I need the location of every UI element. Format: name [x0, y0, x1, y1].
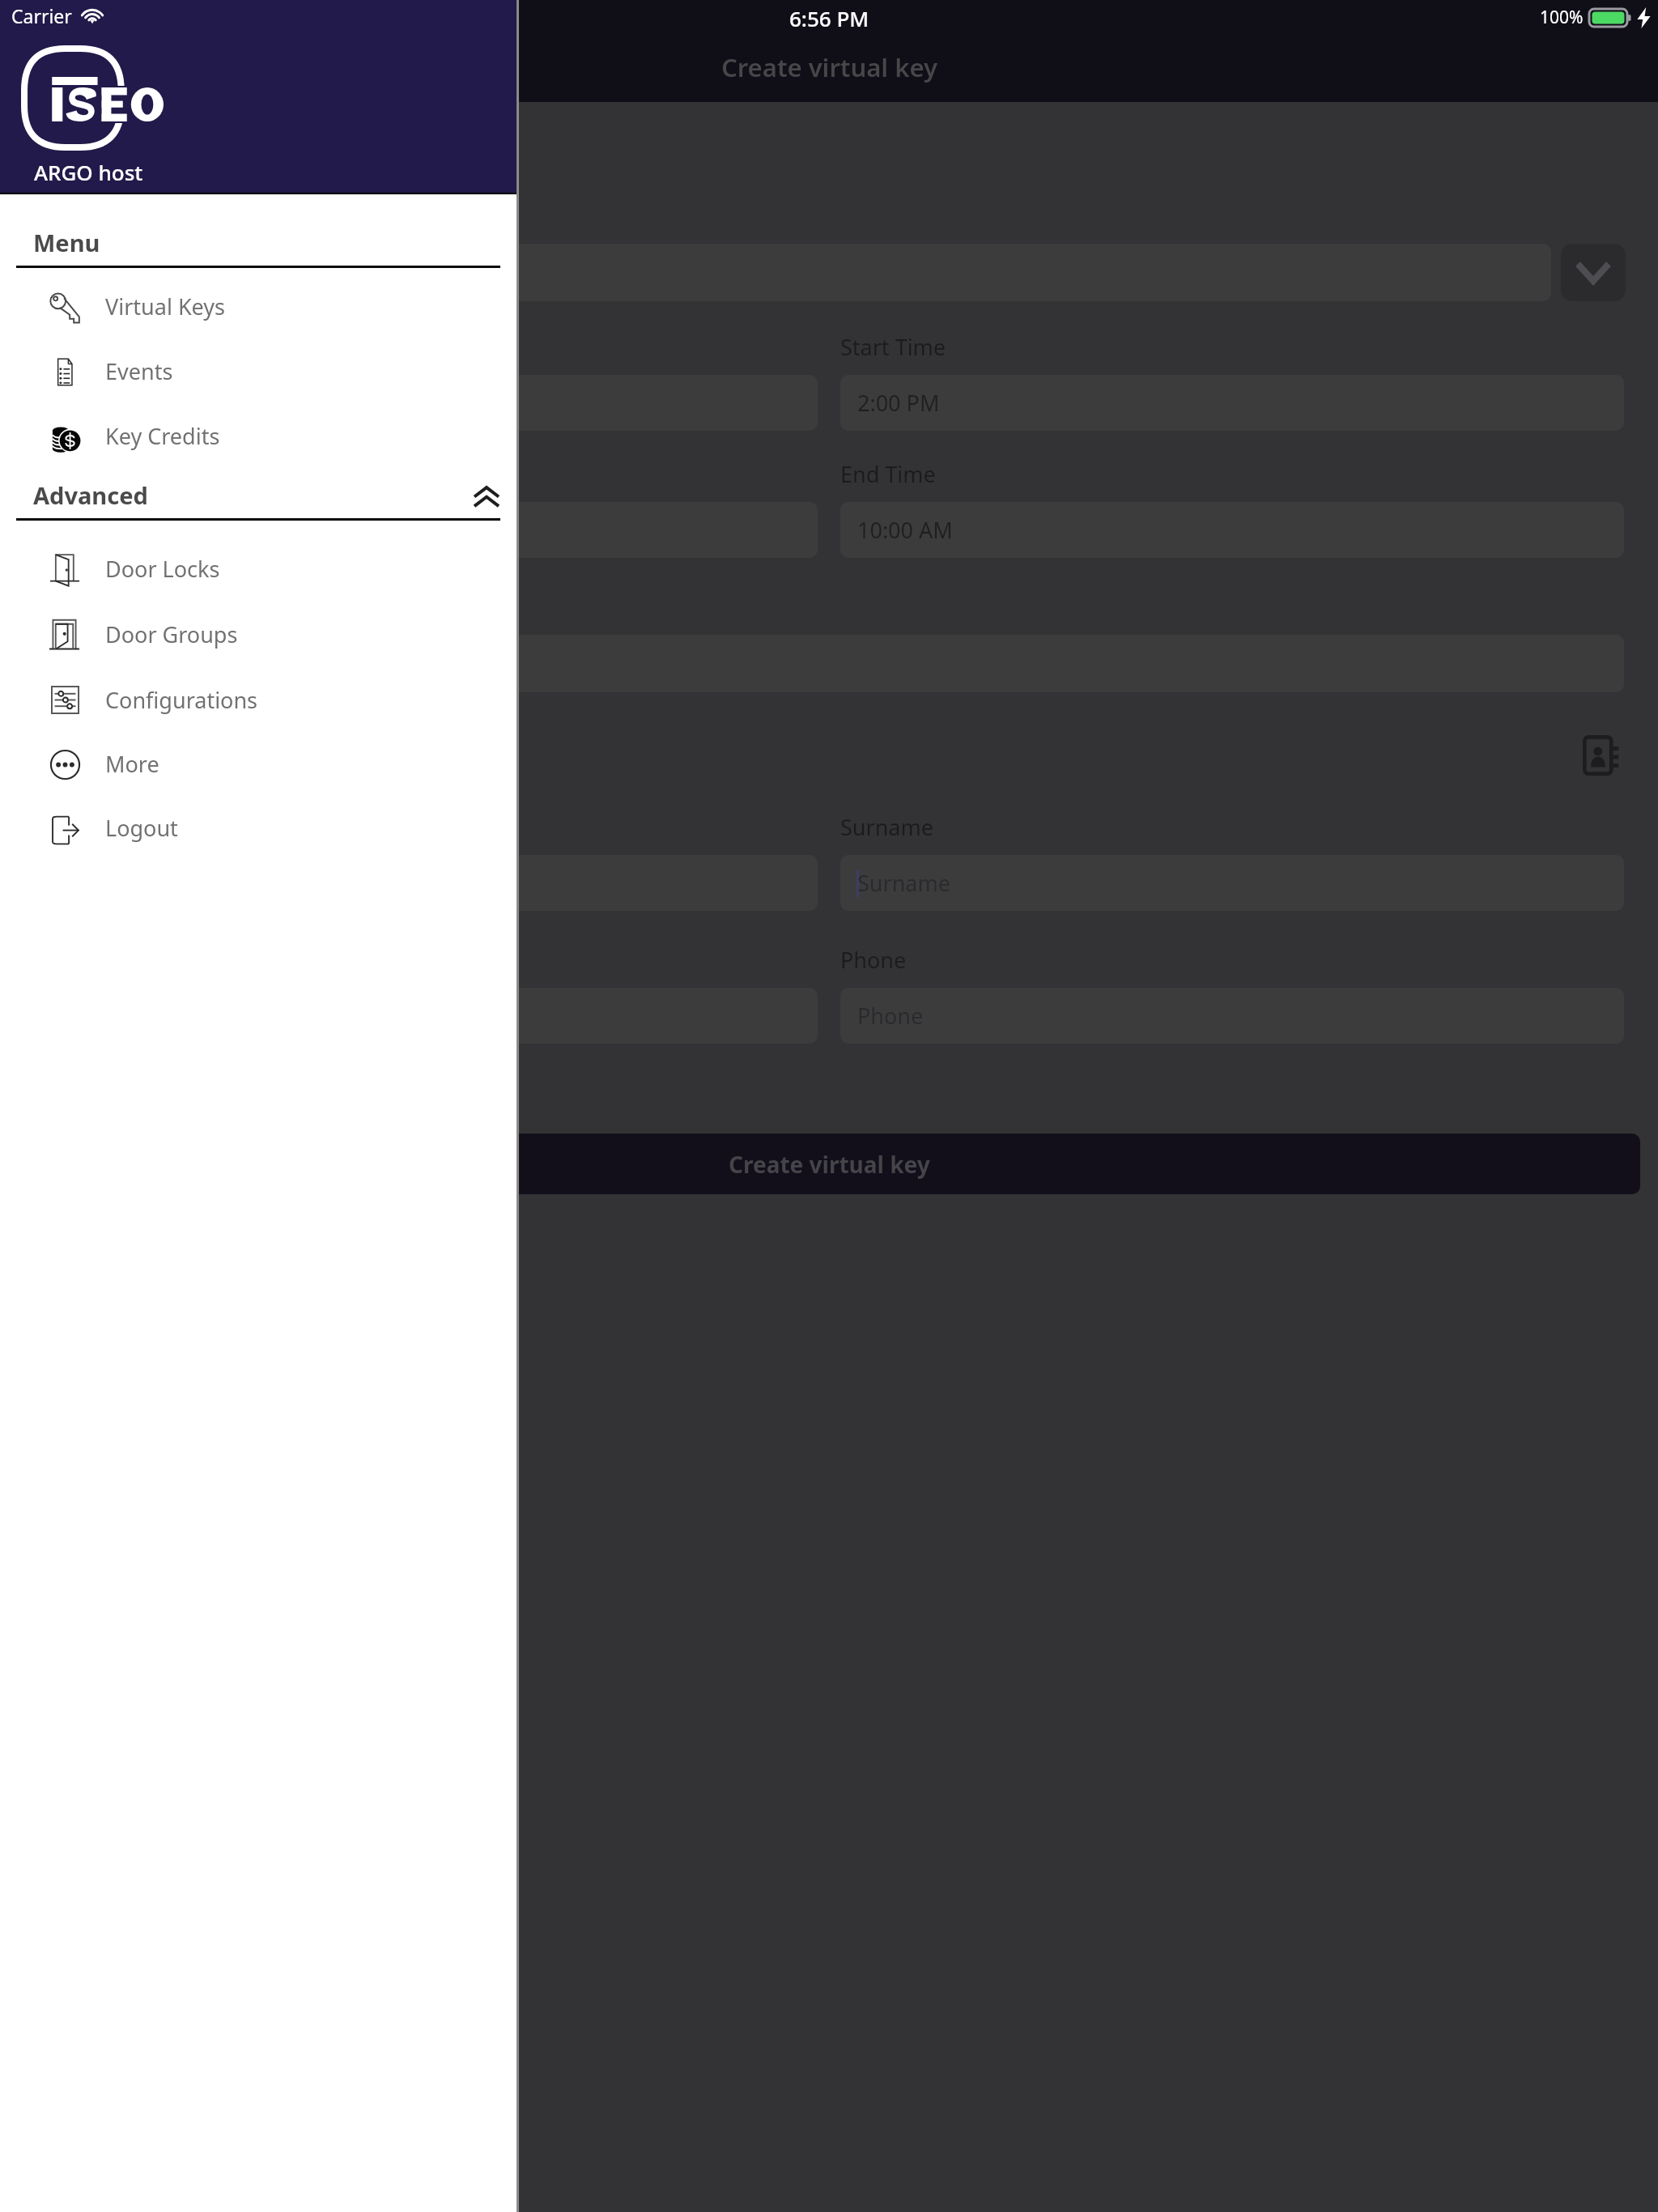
staticText: Phone [857, 1001, 924, 1031]
staticText: Name [34, 812, 96, 842]
staticText: Virtual Keys [105, 291, 225, 321]
staticText: More [105, 749, 159, 779]
staticText: Surname [857, 868, 950, 898]
staticText: Start Date [34, 332, 138, 362]
staticText: Surname [840, 812, 933, 842]
button[interactable] [34, 244, 1551, 301]
button[interactable]: Events [0, 345, 517, 397]
button[interactable] [34, 635, 1624, 692]
staticText: ARGO host [34, 158, 143, 186]
button[interactable]: Door Groups [0, 608, 517, 660]
staticText: Create virtual key [721, 50, 937, 84]
staticText: 10:00 AM [857, 515, 953, 545]
staticText: Start Time [840, 332, 946, 362]
staticText: 100% [1540, 6, 1584, 29]
button[interactable]: 4/15/2025 [34, 375, 818, 431]
staticText: Events [105, 356, 173, 386]
staticText: 4/16/2025 [51, 515, 155, 545]
staticText: 6:56 PM [789, 4, 869, 32]
staticText: Door Groups [105, 619, 238, 649]
button[interactable]: Name [34, 855, 818, 911]
staticText: Configurations [105, 685, 258, 715]
button[interactable]: Email [34, 988, 818, 1044]
button[interactable]: Create virtual key [18, 1134, 1640, 1194]
button[interactable]: Logout [0, 802, 517, 853]
button[interactable]: Menu [0, 216, 517, 268]
staticText: 2:00 PM [857, 388, 940, 418]
button[interactable]: More [0, 738, 517, 789]
button[interactable]: Pick from contacts [1583, 735, 1621, 776]
button[interactable]: Advanced [0, 469, 517, 521]
button[interactable]: Configurations [0, 674, 517, 725]
staticText: Create virtual key [729, 1149, 930, 1180]
staticText: Key Credits [105, 421, 220, 451]
staticText: Phone [840, 945, 907, 975]
staticText: Door Locks [105, 554, 220, 584]
staticText: Logout [105, 813, 178, 843]
staticText: Carrier [11, 3, 72, 28]
button[interactable]: 4/16/2025 [34, 502, 818, 558]
button[interactable]: Collapse Advanced [465, 475, 508, 519]
staticText: Advanced [33, 479, 148, 511]
button[interactable]: Door Locks [0, 542, 517, 594]
staticText: End Date [34, 459, 128, 489]
staticText: End Time [840, 459, 936, 489]
button[interactable]: Virtual Keys [0, 280, 517, 332]
button[interactable]: Key Credits [0, 410, 517, 462]
staticText: Menu [33, 227, 100, 258]
button[interactable]: Expand [1561, 244, 1626, 301]
